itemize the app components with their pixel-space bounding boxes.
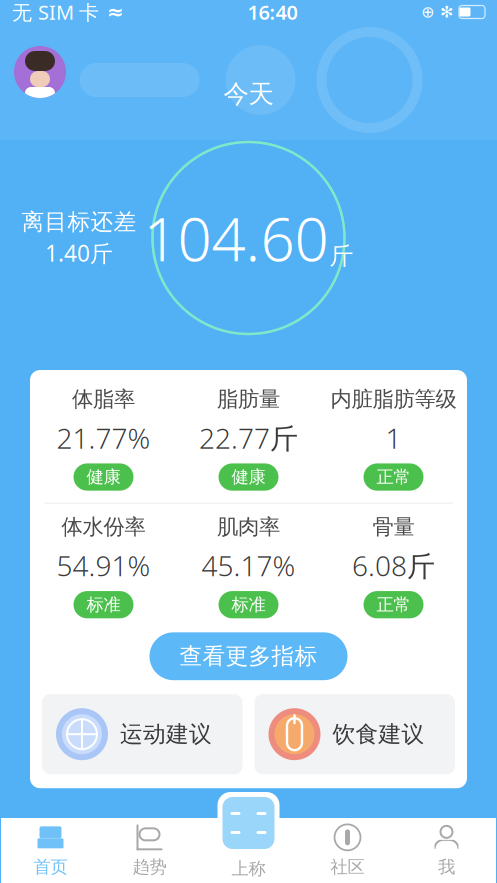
staticText: 社区 xyxy=(330,856,364,878)
staticText: ≈ xyxy=(107,1,124,23)
staticText: 健康 xyxy=(86,466,120,488)
staticText: 1.40斤 xyxy=(45,238,113,268)
button[interactable]: 今天 xyxy=(209,72,287,115)
staticText: ✻ xyxy=(440,3,453,21)
staticText: 趋势 xyxy=(132,856,166,878)
staticText: 体水份率 xyxy=(61,514,145,540)
button[interactable]: 查看更多指标 xyxy=(149,632,347,680)
staticText: 6.08斤 xyxy=(352,547,435,584)
staticText: 104.60 xyxy=(143,198,328,278)
staticText: 正常 xyxy=(376,594,410,615)
button[interactable]: 上称 xyxy=(217,792,279,879)
staticText: 首页 xyxy=(33,856,67,878)
staticText: 离目标还差 xyxy=(21,208,136,236)
staticText: 标准 xyxy=(231,594,265,615)
button[interactable]: 首页 xyxy=(1,823,100,878)
staticText: 无 SIM 卡 xyxy=(12,0,99,25)
staticText: 健康 xyxy=(231,466,265,488)
button[interactable]: 我 xyxy=(397,823,496,878)
staticText: 运动建议 xyxy=(120,720,212,748)
staticText: ⊕ xyxy=(421,3,434,21)
button[interactable]: 社区 xyxy=(298,823,397,878)
staticText: 脂肪量 xyxy=(217,386,280,412)
staticText: 查看更多指标 xyxy=(179,642,317,670)
staticText: 16:40 xyxy=(247,0,297,25)
staticText: 斤 xyxy=(329,241,353,271)
staticText: 标准 xyxy=(86,594,120,615)
staticText: 今天 xyxy=(223,78,273,109)
staticText: 骨量 xyxy=(372,514,414,540)
staticText: 21.77% xyxy=(56,419,150,456)
staticText: 54.91% xyxy=(56,547,150,584)
button[interactable]: 运动建议 xyxy=(42,694,242,774)
staticText: 肌肉率 xyxy=(217,514,280,540)
staticText: 饮食建议 xyxy=(332,720,424,748)
staticText: 体脂率 xyxy=(72,386,135,412)
button[interactable]: 个人头像 xyxy=(14,46,66,98)
staticText: 内脏脂肪等级 xyxy=(330,386,456,412)
staticText: 1 xyxy=(385,419,401,456)
staticText: 22.77斤 xyxy=(199,419,298,456)
button[interactable]: 趋势 xyxy=(100,823,199,878)
button[interactable]: 饮食建议 xyxy=(254,694,455,774)
staticText: 上称 xyxy=(231,858,265,879)
staticText: 我 xyxy=(438,856,455,878)
staticText: 45.17% xyxy=(201,547,295,584)
staticText: 正常 xyxy=(376,466,410,488)
